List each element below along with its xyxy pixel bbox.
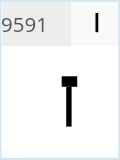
button[interactable]: Application mark xyxy=(2,2,118,158)
button[interactable]: Text input field xyxy=(71,2,118,46)
staticText: 9591 xyxy=(1,10,48,38)
button[interactable]: 9591 xyxy=(2,2,71,46)
